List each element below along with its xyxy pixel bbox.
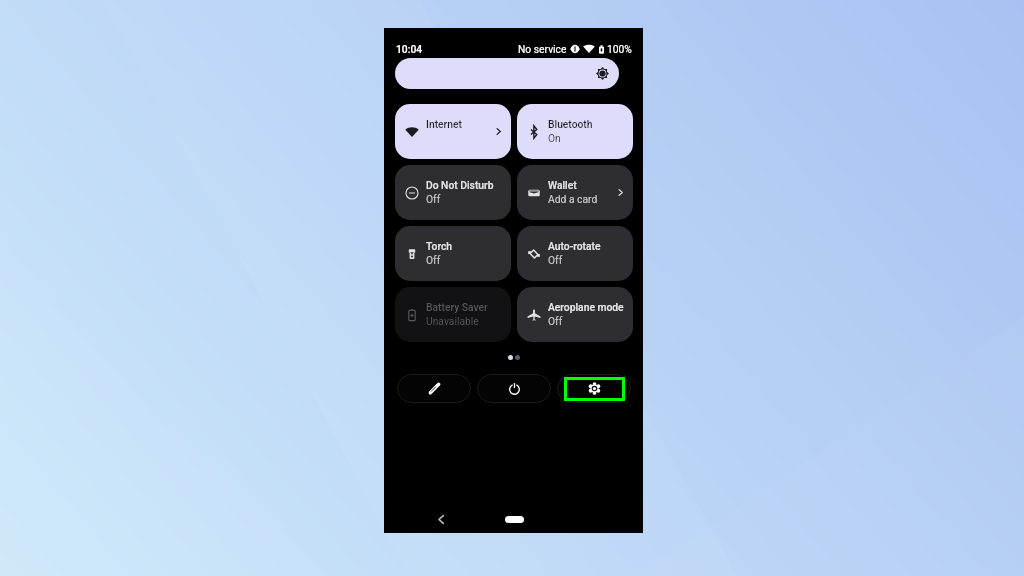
staticText: Wallet [548, 179, 577, 191]
button[interactable]: Wallet [517, 165, 633, 220]
button[interactable]: Internet [395, 104, 511, 159]
button[interactable]: Battery Saver [395, 287, 511, 342]
staticText: 100% [607, 43, 632, 55]
staticText: Off [426, 254, 441, 266]
staticText: Off [426, 193, 441, 205]
staticText: Aeroplane mode [548, 301, 624, 313]
staticText: Do Not Disturb [426, 179, 494, 191]
staticText: Torch [426, 240, 453, 252]
button[interactable]: Auto-rotate [517, 226, 633, 281]
staticText: Off [548, 254, 563, 266]
button[interactable]: Home [505, 516, 524, 523]
button[interactable]: Settings [557, 374, 631, 403]
staticText: Add a card [548, 193, 598, 205]
staticText: Internet [426, 118, 462, 130]
button[interactable]: Do Not Disturb [395, 165, 511, 220]
staticText: 10:04 [396, 43, 423, 55]
staticText: Auto-rotate [548, 240, 601, 252]
button[interactable]: Bluetooth [517, 104, 633, 159]
button[interactable]: Edit tiles [397, 374, 471, 403]
button[interactable]: Brightness [395, 58, 619, 89]
button[interactable]: Aeroplane mode [517, 287, 633, 342]
button[interactable]: Power [477, 374, 551, 403]
staticText: Battery Saver [426, 301, 488, 313]
button[interactable]: Back [432, 510, 450, 528]
staticText: Bluetooth [548, 118, 593, 130]
button[interactable]: Torch [395, 226, 511, 281]
staticText: Unavailable [426, 315, 479, 327]
staticText: No service [518, 43, 567, 55]
staticText: On [548, 132, 561, 144]
staticText: Off [548, 315, 563, 327]
